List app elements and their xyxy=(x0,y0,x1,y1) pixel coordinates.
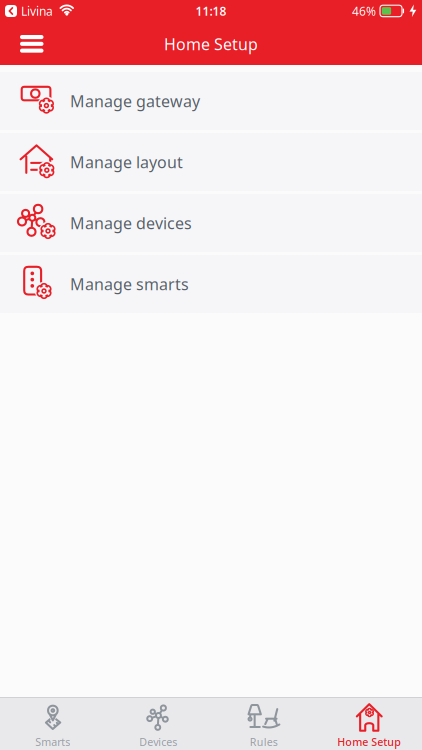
button[interactable]: Menu xyxy=(0,28,53,60)
staticText: Manage smarts xyxy=(70,273,189,295)
staticText: Home Setup xyxy=(337,735,401,749)
staticText: 46% xyxy=(352,3,376,19)
button[interactable]: Manage layout xyxy=(0,133,422,191)
staticText: Manage devices xyxy=(70,212,192,234)
button[interactable]: Manage gateway xyxy=(0,72,422,130)
staticText: Home Setup xyxy=(164,33,258,55)
button[interactable]: Home Setup xyxy=(316,698,422,749)
staticText: Manage gateway xyxy=(70,90,200,112)
button[interactable]: Manage smarts xyxy=(0,255,422,313)
button[interactable]: Devices xyxy=(105,698,211,749)
staticText: Rules xyxy=(250,735,278,749)
staticText: Manage layout xyxy=(70,151,183,173)
staticText: Livina xyxy=(21,3,53,19)
staticText: Devices xyxy=(139,735,177,749)
staticText: Smarts xyxy=(35,735,70,749)
staticText: 11:18 xyxy=(195,3,226,19)
button[interactable]: Rules xyxy=(211,698,316,749)
button[interactable]: Manage devices xyxy=(0,194,422,252)
button[interactable]: Smarts xyxy=(0,698,105,749)
